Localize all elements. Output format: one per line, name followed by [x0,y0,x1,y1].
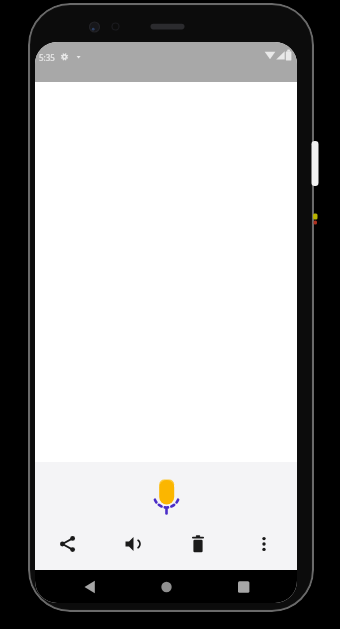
button[interactable] [100,527,165,561]
button[interactable] [152,476,181,520]
button[interactable] [165,527,231,561]
button[interactable] [35,527,100,561]
staticText: 5:35 [39,52,55,63]
button[interactable] [231,527,297,561]
